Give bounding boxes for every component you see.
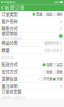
staticText: 100% — [54, 0, 59, 4]
staticText: 收货地址 — [2, 31, 18, 37]
staticText: 预约 — [56, 12, 62, 17]
staticText: 发票信息 — [2, 76, 18, 82]
button[interactable]: 商品分类 — [0, 40, 64, 47]
staticText: 普通 — [36, 12, 42, 17]
staticText: 中国移动 — [4, 0, 16, 4]
button[interactable]: Back — [0, 4, 5, 11]
staticText: 转账 — [56, 70, 62, 74]
staticText: 配送方式 — [2, 62, 18, 68]
staticText: 配送信息 — [2, 55, 14, 60]
staticText: 不开票 — [43, 77, 52, 81]
staticText: 数量 — [2, 47, 10, 53]
staticText: 备注说明 — [2, 83, 18, 89]
staticText: 订单总金额 — [2, 89, 22, 95]
button[interactable]: 配送方式 — [0, 61, 64, 68]
staticText: 自提 — [46, 62, 52, 67]
staticText: 订单类型 — [2, 11, 18, 17]
staticText: 开票 — [56, 77, 62, 81]
button[interactable]: 支付方式 — [0, 69, 64, 75]
staticText: 支付方式 — [2, 69, 18, 75]
staticText: 请填写详细地址 — [2, 37, 23, 41]
button[interactable]: 客户名称 — [0, 18, 64, 25]
staticText: 商品分类 — [2, 40, 18, 46]
button[interactable]: 订单类型 — [0, 11, 64, 18]
staticText: 现金 — [46, 70, 52, 74]
staticText: 含税费与运费合计 — [2, 95, 26, 99]
button[interactable]: 数量 — [0, 47, 64, 54]
staticText: 联系方式 — [2, 26, 18, 32]
staticText: 客户名称 — [2, 19, 18, 25]
staticText: 送货 — [56, 62, 62, 67]
staticText: 请输入数量 — [44, 48, 59, 53]
button[interactable]: 收货地址 — [0, 33, 64, 39]
staticText: 请选择分类 — [44, 41, 59, 45]
button[interactable]: 备注说明 — [0, 83, 64, 90]
staticText: 新增订单 — [5, 4, 25, 11]
button[interactable]: 联系方式 — [0, 25, 64, 32]
staticText: 加急 — [46, 12, 52, 17]
button[interactable]: 发票信息 — [0, 76, 64, 83]
